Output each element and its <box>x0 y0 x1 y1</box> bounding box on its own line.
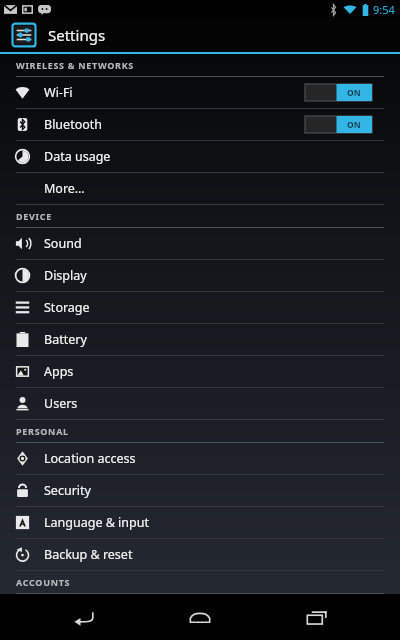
staticText: DEVICE <box>16 210 52 222</box>
button[interactable]: Home <box>167 594 233 640</box>
staticText: ON <box>347 87 361 99</box>
staticText: Security <box>44 482 91 499</box>
button[interactable]: Language & input <box>0 507 400 538</box>
staticText: Language & input <box>44 514 149 531</box>
staticText: Display <box>44 267 87 284</box>
staticText: Wi-Fi <box>44 84 73 101</box>
button[interactable]: Sound <box>0 228 400 259</box>
staticText: WIRELESS & NETWORKS <box>16 59 134 71</box>
button[interactable]: Settings <box>10 21 38 49</box>
staticText: 9:54 <box>373 2 395 17</box>
button[interactable]: Bluetooth on <box>305 116 372 133</box>
staticText: More… <box>44 180 85 197</box>
button[interactable]: Battery <box>0 324 400 355</box>
button[interactable]: Storage <box>0 292 400 323</box>
staticText: Location access <box>44 450 136 467</box>
button[interactable]: Wi-Fi on <box>305 84 372 101</box>
staticText: PERSONAL <box>16 425 69 437</box>
button[interactable]: Backup & reset <box>0 539 400 570</box>
button[interactable]: Back <box>51 594 117 640</box>
staticText: Sound <box>44 235 82 252</box>
staticText: ACCOUNTS <box>16 576 71 588</box>
button[interactable]: Users <box>0 388 400 419</box>
button[interactable]: Security <box>0 475 400 506</box>
button[interactable]: Location access <box>0 443 400 474</box>
button[interactable]: Bluetooth <box>0 109 400 140</box>
button[interactable]: Data usage <box>0 141 400 172</box>
button[interactable]: Wi-Fi <box>0 77 400 108</box>
staticText: Battery <box>44 331 87 348</box>
staticText: Data usage <box>44 148 111 165</box>
staticText: ON <box>347 119 361 131</box>
staticText: Settings <box>48 25 106 45</box>
button[interactable]: More… <box>0 173 400 204</box>
button[interactable]: Recent apps <box>284 594 350 640</box>
staticText: Backup & reset <box>44 546 133 563</box>
staticText: Users <box>44 395 78 412</box>
staticText: Storage <box>44 299 90 316</box>
staticText: Apps <box>44 363 74 380</box>
button[interactable]: Display <box>0 260 400 291</box>
staticText: Bluetooth <box>44 116 103 133</box>
button[interactable]: Apps <box>0 356 400 387</box>
